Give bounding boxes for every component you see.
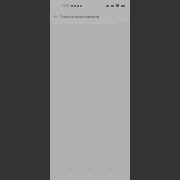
button[interactable]: Back bbox=[50, 11, 60, 22]
staticText: 13:41 bbox=[61, 3, 70, 8]
staticText: Список приложений bbox=[60, 14, 100, 19]
